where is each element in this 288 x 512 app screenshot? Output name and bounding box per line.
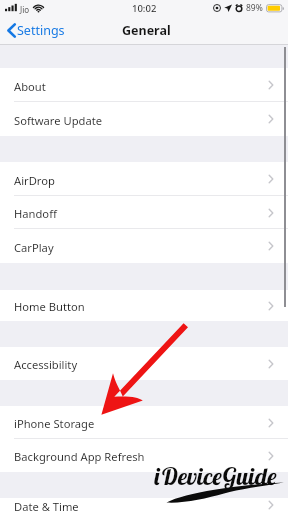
button[interactable]: Settings bbox=[0, 19, 73, 42]
button[interactable]: AirDrop bbox=[0, 162, 288, 196]
staticText: General bbox=[122, 22, 171, 39]
staticText: iDeviceGuide bbox=[154, 461, 277, 491]
button[interactable]: iPhone Storage bbox=[0, 406, 288, 439]
staticText: AirDrop bbox=[14, 173, 55, 188]
other: Annotation arrow bbox=[0, 0, 288, 512]
staticText: About bbox=[14, 79, 46, 94]
staticText: Home Button bbox=[14, 299, 85, 314]
staticText: Date & Time bbox=[14, 499, 79, 512]
button[interactable]: Accessibility bbox=[0, 347, 288, 380]
staticText: Background App Refresh bbox=[14, 449, 145, 464]
button[interactable]: Background App Refresh bbox=[0, 439, 288, 472]
staticText: Software Update bbox=[14, 113, 103, 128]
button[interactable]: Date & Time bbox=[0, 498, 288, 512]
button[interactable]: About bbox=[0, 68, 288, 102]
staticText: 10:02 bbox=[132, 2, 157, 15]
staticText: Accessibility bbox=[14, 357, 78, 372]
staticText: iPhone Storage bbox=[14, 416, 95, 431]
button[interactable]: Handoff bbox=[0, 196, 288, 229]
staticText: Settings bbox=[17, 22, 65, 39]
button[interactable]: Software Update bbox=[0, 102, 288, 136]
staticText: Jio bbox=[20, 4, 30, 15]
button[interactable]: CarPlay bbox=[0, 229, 288, 263]
staticText: 89% bbox=[246, 2, 263, 14]
staticText: CarPlay bbox=[14, 240, 54, 255]
staticText: Handoff bbox=[14, 206, 57, 221]
button[interactable]: Home Button bbox=[0, 290, 288, 321]
